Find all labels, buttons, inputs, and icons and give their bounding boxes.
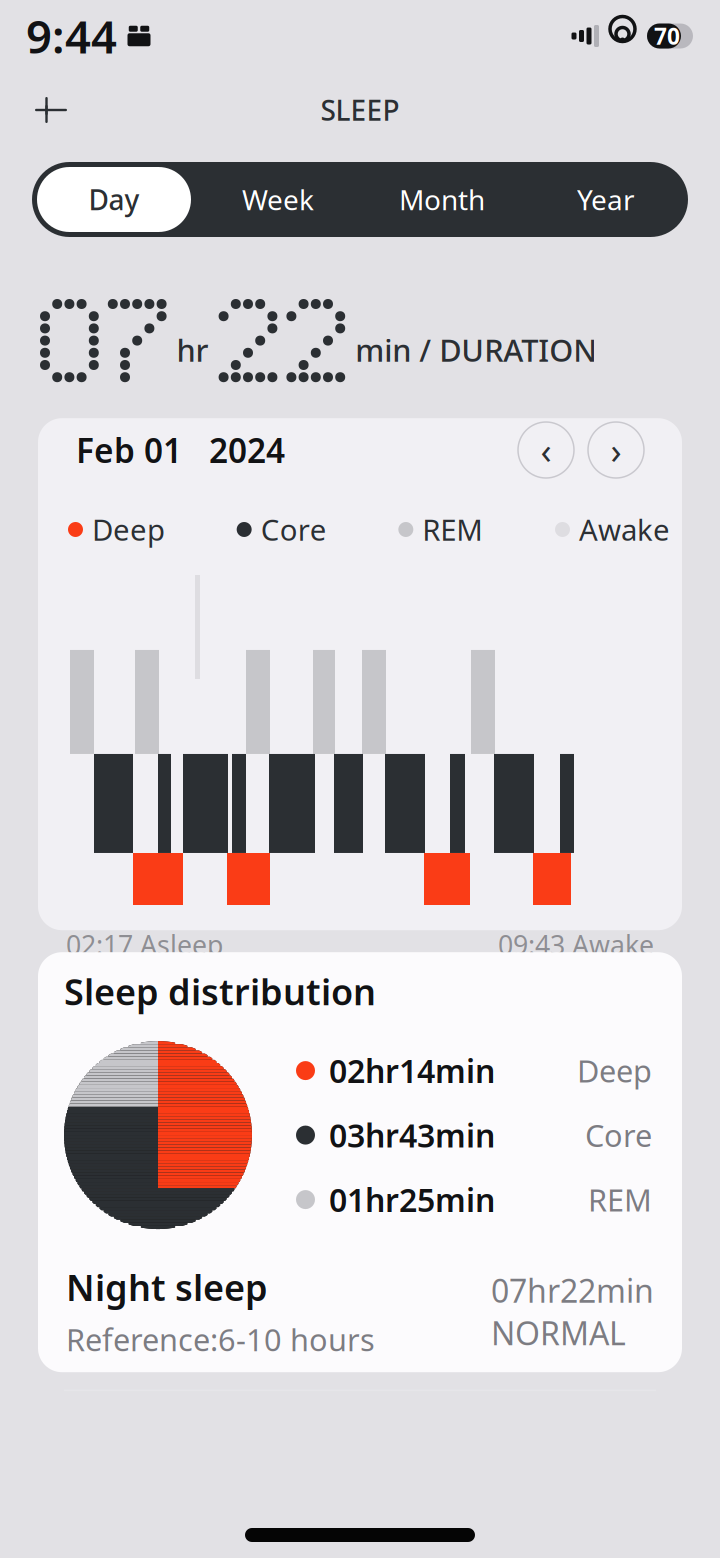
- button[interactable]: Next day: [588, 422, 644, 478]
- staticText: Sleep distribution: [64, 967, 376, 1015]
- staticText: SLEEP: [320, 91, 399, 129]
- staticText: 01hr25min: [329, 1178, 495, 1221]
- staticText: Deep: [577, 1050, 652, 1091]
- staticText: Awake: [579, 510, 670, 549]
- staticText: 02hr14min: [329, 1049, 495, 1092]
- staticText: 02:17 Asleep: [66, 927, 223, 962]
- button[interactable]: Month: [360, 162, 524, 237]
- staticText: Day: [88, 181, 139, 218]
- button[interactable]: Year: [524, 162, 688, 237]
- staticText: Week: [242, 181, 314, 218]
- staticText: Night sleep: [66, 1263, 268, 1311]
- staticText: Month: [399, 181, 485, 218]
- staticText: hr: [177, 329, 209, 370]
- staticText: 70: [654, 21, 680, 51]
- button[interactable]: Previous day: [518, 422, 574, 478]
- staticText: Deep: [92, 510, 165, 549]
- staticText: REM: [422, 510, 483, 549]
- staticText: ›: [610, 426, 621, 474]
- staticText: REM: [588, 1179, 652, 1220]
- button[interactable]: Back: [24, 88, 78, 132]
- button[interactable]: Day: [32, 162, 196, 237]
- staticText: ‹: [540, 426, 551, 474]
- staticText: Core: [261, 510, 327, 549]
- staticText: 09:43 Awake: [498, 927, 654, 962]
- staticText: 03hr43min: [329, 1114, 495, 1156]
- staticText: 07hr22min NORMAL: [491, 1269, 654, 1354]
- staticText: min / DURATION: [355, 329, 597, 370]
- staticText: 9:44: [26, 6, 117, 66]
- staticText: Year: [577, 181, 635, 218]
- staticText: Feb 01 2024: [76, 428, 285, 472]
- staticText: Reference:6-10 hours: [66, 1319, 375, 1360]
- staticText: Core: [585, 1115, 652, 1155]
- button[interactable]: Week: [196, 162, 360, 237]
